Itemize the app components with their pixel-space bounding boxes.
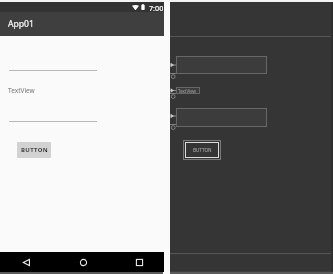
staticText: 7:00	[149, 3, 164, 13]
button[interactable]: BUTTON	[17, 142, 51, 158]
staticText: BUTTON	[193, 147, 212, 153]
staticText: TextView	[178, 88, 197, 94]
staticText: BUTTON	[21, 146, 48, 154]
button[interactable]: Home	[73, 253, 93, 271]
staticText: TextView	[8, 86, 35, 95]
button[interactable]: Back	[16, 253, 36, 271]
button[interactable]: Recent apps	[129, 253, 149, 271]
button[interactable]: BUTTON	[183, 140, 221, 160]
staticText: App01	[8, 18, 34, 30]
